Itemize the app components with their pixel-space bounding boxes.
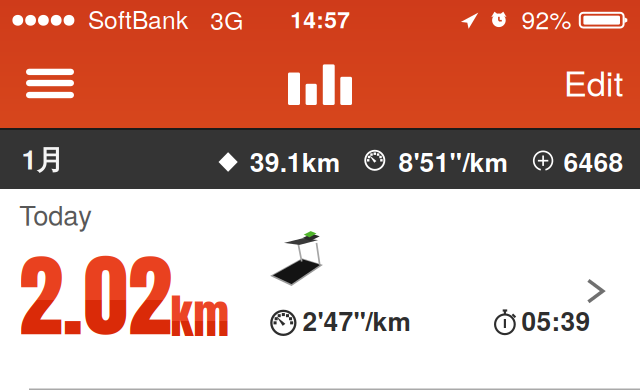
staticText: Today: [19, 194, 92, 233]
staticText: 2.02: [18, 228, 171, 364]
button[interactable]: Edit: [554, 40, 640, 128]
staticText: 6468: [564, 142, 624, 180]
staticText: 2'47"/km: [302, 301, 410, 339]
staticText: 39.1km: [250, 142, 340, 180]
staticText: 14:57: [290, 2, 350, 35]
staticText: Edit: [564, 57, 624, 106]
staticText: SoftBank: [88, 1, 188, 36]
staticText: km: [170, 281, 229, 352]
staticText: km: [170, 281, 229, 352]
staticText: 92%: [522, 1, 572, 36]
button[interactable]: Menu: [0, 40, 100, 128]
button[interactable]: Today: [0, 189, 640, 390]
staticText: 3G: [210, 2, 243, 37]
staticText: 2.02: [18, 228, 171, 364]
staticText: 8'51"/km: [398, 142, 507, 180]
staticText: 05:39: [522, 301, 591, 339]
staticText: 1月: [21, 139, 63, 178]
